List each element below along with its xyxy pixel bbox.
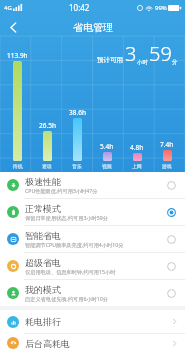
staticText: 待机 xyxy=(13,163,23,169)
button[interactable]: Back xyxy=(2,16,24,38)
staticText: 预计可用 xyxy=(97,56,123,64)
button[interactable]: 智能省电 xyxy=(0,226,185,252)
staticText: 4G xyxy=(4,4,12,12)
staticText: 3 xyxy=(125,40,137,67)
button[interactable]: Select mode xyxy=(164,178,178,192)
staticText: 通话 xyxy=(42,163,52,169)
staticText: 智能省电 xyxy=(25,230,61,241)
staticText: 游戏 xyxy=(162,163,172,169)
staticText: 仅启用电话、信息和时钟,约可用15小时 xyxy=(25,268,116,275)
staticText: 小时 xyxy=(137,59,148,66)
staticText: 智能调节CPU频率及亮度,约可用4小时10分 xyxy=(25,241,124,248)
staticText: 我的模式 xyxy=(25,284,61,295)
staticText: 4.8h xyxy=(130,143,144,152)
staticText: 113.9h xyxy=(7,51,28,60)
staticText: 音乐 xyxy=(72,163,82,169)
staticText: 极速性能 xyxy=(25,176,61,187)
staticText: 59 xyxy=(149,40,172,67)
button[interactable]: Select mode xyxy=(164,286,178,300)
staticText: 保留日常使用状态,约可用3小时59分 xyxy=(25,214,108,221)
button[interactable]: 正常模式 xyxy=(0,199,185,225)
staticText: CPU性能最优,约可用3小时47分 xyxy=(25,187,98,194)
button[interactable]: 后台高耗电 xyxy=(0,334,185,352)
staticText: 耗电排行 xyxy=(25,316,61,327)
staticText: 26.5h xyxy=(39,121,56,130)
staticText: 分 xyxy=(172,59,178,66)
button[interactable]: 我的模式 xyxy=(0,280,185,306)
staticText: 正常模式 xyxy=(25,203,61,214)
staticText: 视频 xyxy=(102,163,112,169)
staticText: 自定义省电优先项,约可用6小时10分 xyxy=(25,295,108,302)
button[interactable]: 耗电排行 xyxy=(0,310,185,333)
staticText: 省电管理 xyxy=(73,21,113,34)
button[interactable]: Select mode xyxy=(164,259,178,273)
staticText: 10:42 xyxy=(69,2,90,13)
button[interactable]: Select mode xyxy=(164,232,178,246)
staticText: 99% xyxy=(155,4,167,12)
staticText: 超级省电 xyxy=(25,257,61,268)
button[interactable]: Selected mode xyxy=(164,205,178,219)
staticText: 后台高耗电 xyxy=(25,338,70,349)
staticText: 上网 xyxy=(132,163,142,169)
button[interactable]: 超级省电 xyxy=(0,253,185,279)
staticText: 5.4h xyxy=(100,142,114,151)
staticText: 7.4h xyxy=(160,140,174,149)
button[interactable]: 极速性能 xyxy=(0,172,185,198)
staticText: 38.6h xyxy=(69,108,86,117)
